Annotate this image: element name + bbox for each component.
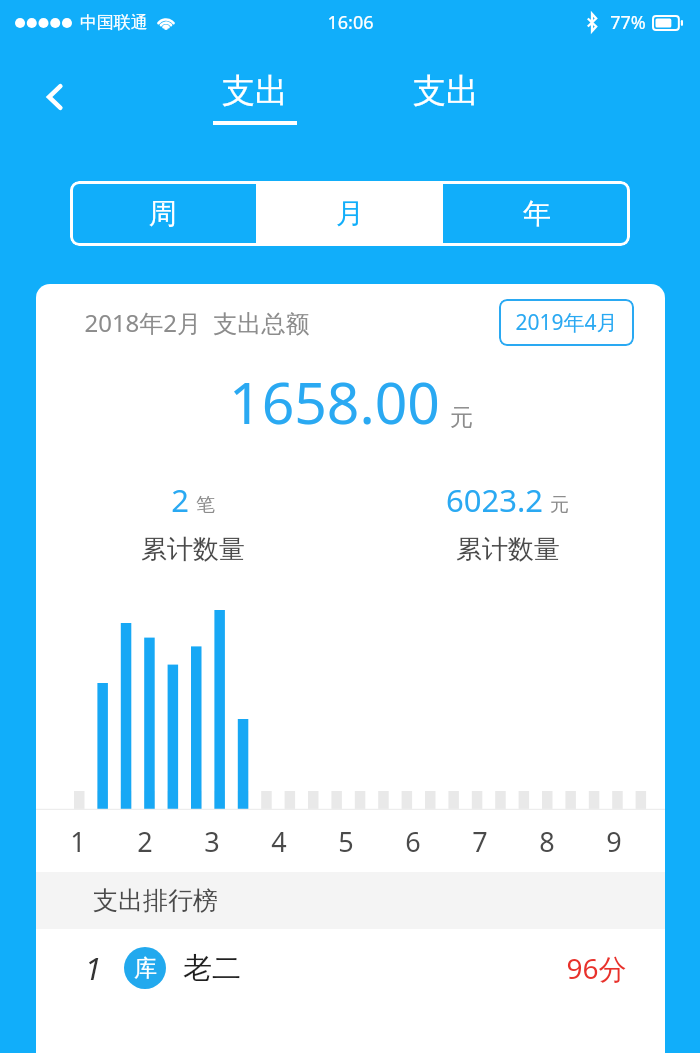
staticText: 支出 — [413, 70, 479, 112]
staticText: 6023.2 — [446, 479, 543, 521]
button[interactable]: 支出 — [403, 70, 489, 112]
staticText: 笔 — [196, 493, 215, 517]
button[interactable]: 支出 — [203, 70, 307, 125]
staticText: 周 — [149, 196, 177, 231]
staticText: 元 — [550, 493, 569, 517]
staticText: 3 — [204, 823, 220, 860]
button[interactable]: 月 — [256, 181, 443, 246]
staticText: 累计数量 — [456, 533, 560, 566]
staticText: 96分 — [566, 949, 627, 987]
button[interactable]: 年 — [443, 181, 630, 246]
staticText: 元 — [450, 403, 473, 432]
staticText: 8 — [539, 823, 555, 860]
staticText: 2019年4月 — [515, 308, 618, 337]
staticText: 6 — [405, 823, 421, 860]
staticText: 5 — [338, 823, 354, 860]
button[interactable]: 周 — [70, 181, 256, 246]
staticText: 老二 — [183, 950, 241, 987]
staticText: 支出 — [222, 70, 288, 112]
staticText: 年 — [523, 196, 551, 231]
staticText: 库 — [134, 954, 157, 983]
staticText: 中国联通 — [80, 12, 148, 33]
staticText: 2 — [171, 479, 189, 521]
staticText: 1 — [84, 947, 102, 989]
staticText: 4 — [271, 823, 287, 860]
staticText: 9 — [606, 823, 622, 860]
staticText: 7 — [472, 823, 488, 860]
staticText: 1 — [70, 823, 86, 860]
button[interactable]: 1 — [36, 929, 665, 1007]
staticText: 16:06 — [327, 10, 374, 35]
staticText: 77% — [610, 10, 646, 35]
staticText: 支出排行榜 — [93, 885, 218, 916]
staticText: 2 — [137, 823, 153, 860]
staticText: 1658.00 — [229, 363, 440, 441]
staticText: 累计数量 — [141, 533, 245, 566]
button[interactable]: Back — [31, 73, 79, 121]
button[interactable]: 2019年4月 — [499, 299, 634, 346]
staticText: 月 — [336, 196, 364, 231]
staticText: 2018年2月 支出总额 — [84, 306, 310, 339]
